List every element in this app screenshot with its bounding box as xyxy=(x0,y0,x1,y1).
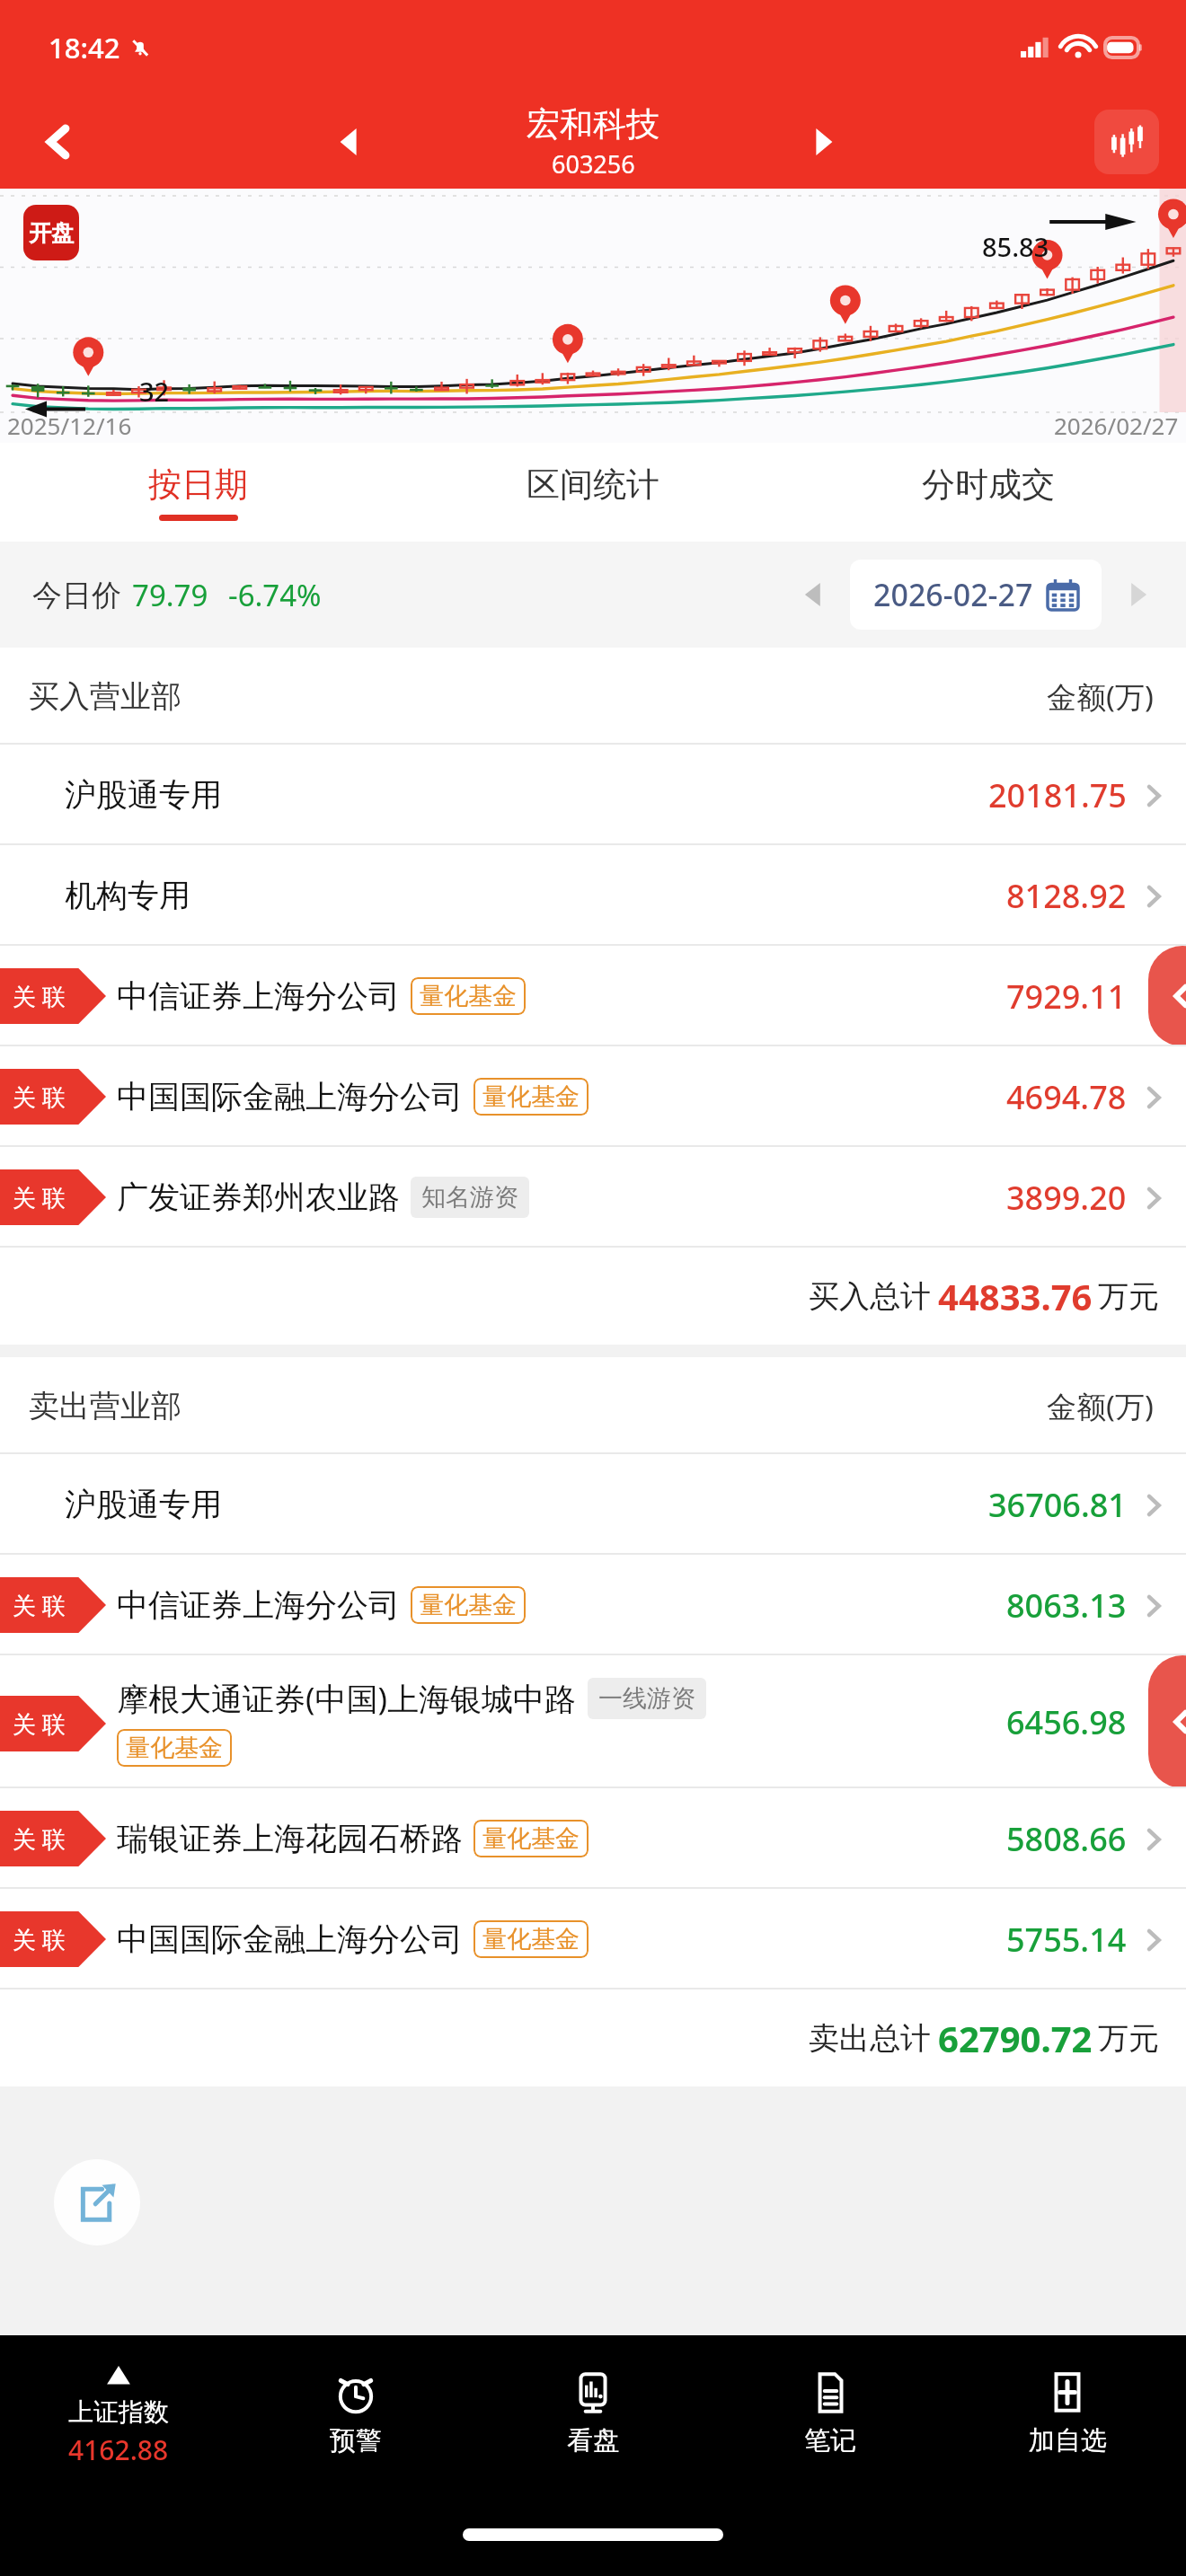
staticText: 4694.78 xyxy=(1006,1075,1127,1119)
staticText: 8063.13 xyxy=(1006,1584,1127,1628)
staticText: 量化基金 xyxy=(482,1924,580,1954)
staticText: 3899.20 xyxy=(1006,1176,1127,1220)
staticText: 中信证券上海分公司 xyxy=(117,976,400,1016)
staticText: 量化基金 xyxy=(482,1081,580,1112)
staticText: 8128.92 xyxy=(1006,874,1127,918)
button[interactable]: 机构专用 xyxy=(0,845,1186,946)
staticText: 上证指数 xyxy=(68,2396,169,2428)
staticText: 2026/02/27 xyxy=(1054,410,1179,441)
button[interactable]: Share xyxy=(54,2159,140,2245)
staticText: 加自选 xyxy=(1029,2424,1107,2457)
button[interactable]: Next stock xyxy=(791,110,854,173)
button[interactable]: 笔记 xyxy=(712,2335,949,2492)
button[interactable]: 按日期 xyxy=(0,443,395,542)
staticText: 20181.75 xyxy=(988,773,1127,817)
button[interactable]: K line chart xyxy=(1094,110,1159,174)
button[interactable]: Expand xyxy=(1148,946,1186,1046)
staticText: 5808.66 xyxy=(1006,1817,1127,1861)
staticText: 按日期 xyxy=(148,463,248,506)
staticText: 量化基金 xyxy=(420,1590,517,1620)
staticText: 量化基金 xyxy=(126,1733,223,1763)
button[interactable]: 区间统计 xyxy=(395,443,791,542)
button[interactable]: 看盘 xyxy=(474,2335,712,2492)
button[interactable]: 开盘 xyxy=(23,205,79,260)
staticText: 36706.81 xyxy=(988,1483,1127,1527)
staticText: 区间统计 xyxy=(527,463,659,506)
staticText: 瑞银证券上海花园石桥路 xyxy=(117,1819,463,1858)
staticText: 44833.76 xyxy=(938,1272,1093,1320)
button[interactable]: 2026-02-27 xyxy=(850,560,1102,630)
staticText: 万元 xyxy=(1098,2019,1159,2058)
staticText: 卖出总计 xyxy=(809,2019,931,2058)
staticText: 中信证券上海分公司 xyxy=(117,1585,400,1625)
button[interactable]: 分时成交 xyxy=(791,443,1186,542)
staticText: 2026-02-27 xyxy=(873,574,1033,615)
button[interactable]: 沪股通专用 xyxy=(0,1454,1186,1555)
staticText: 32 xyxy=(139,374,170,409)
button[interactable]: 沪股通专用 xyxy=(0,745,1186,845)
button[interactable]: Previous day xyxy=(789,570,837,619)
button[interactable]: 加自选 xyxy=(949,2335,1186,2492)
staticText: 一线游资 xyxy=(598,1683,695,1714)
staticText: 关 联 xyxy=(13,1589,66,1621)
staticText: 买入总计 xyxy=(809,1277,931,1316)
button[interactable]: Previous stock xyxy=(319,110,382,173)
button[interactable]: 关 联 xyxy=(0,1889,1186,1989)
staticText: 关 联 xyxy=(13,1081,66,1113)
button[interactable]: Back xyxy=(27,110,90,173)
staticText: 量化基金 xyxy=(420,981,517,1011)
staticText: 预警 xyxy=(330,2424,382,2457)
staticText: 量化基金 xyxy=(482,1823,580,1854)
staticText: 关 联 xyxy=(13,1707,66,1740)
button[interactable]: 关 联 xyxy=(0,1555,1186,1655)
staticText: -6.74% xyxy=(228,575,322,615)
button[interactable]: 关 联 xyxy=(0,946,1186,1046)
staticText: 关 联 xyxy=(13,980,66,1012)
staticText: 7929.11 xyxy=(1006,975,1127,1019)
staticText: 4162.88 xyxy=(68,2431,169,2468)
button[interactable]: 关 联 xyxy=(0,1046,1186,1147)
staticText: 中国国际金融上海分公司 xyxy=(117,1077,463,1116)
button[interactable]: 关 联 xyxy=(0,1655,1186,1788)
staticText: 万元 xyxy=(1098,1277,1159,1316)
staticText: 看盘 xyxy=(567,2424,619,2457)
button[interactable]: Expand xyxy=(1148,1655,1186,1788)
staticText: 关 联 xyxy=(13,1181,66,1213)
staticText: 知名游资 xyxy=(421,1182,518,1213)
staticText: 金额(万) xyxy=(1047,676,1154,717)
staticText: 机构专用 xyxy=(65,876,190,915)
staticText: 金额(万) xyxy=(1047,1386,1154,1426)
staticText: 5755.14 xyxy=(1006,1918,1127,1962)
button[interactable]: Next day xyxy=(1114,570,1163,619)
staticText: 沪股通专用 xyxy=(65,775,222,815)
staticText: 今日价 xyxy=(32,577,121,614)
staticText: 中国国际金融上海分公司 xyxy=(117,1919,463,1959)
staticText: 开盘 xyxy=(29,219,74,247)
staticText: 摩根大通证券(中国)上海银城中路 xyxy=(117,1677,577,1720)
staticText: 85.83 xyxy=(982,229,1049,264)
staticText: 603256 xyxy=(552,147,635,181)
staticText: 沪股通专用 xyxy=(65,1485,222,1524)
staticText: 买入营业部 xyxy=(29,677,181,716)
button[interactable]: 上证指数 xyxy=(0,2335,237,2492)
staticText: 18:42 xyxy=(49,29,120,66)
staticText: 笔记 xyxy=(804,2424,856,2457)
staticText: 6456.98 xyxy=(1006,1700,1127,1744)
staticText: 关 联 xyxy=(13,1822,66,1855)
staticText: 卖出营业部 xyxy=(29,1387,181,1425)
staticText: 分时成交 xyxy=(922,463,1055,506)
staticText: 广发证券郑州农业路 xyxy=(117,1178,400,1217)
staticText: 2025/12/16 xyxy=(7,410,132,441)
staticText: 宏和科技 xyxy=(527,103,659,146)
button[interactable]: 预警 xyxy=(237,2335,474,2492)
button[interactable]: 关 联 xyxy=(0,1147,1186,1248)
staticText: 关 联 xyxy=(13,1923,66,1955)
button[interactable]: 关 联 xyxy=(0,1788,1186,1889)
staticText: 62790.72 xyxy=(938,2014,1093,2062)
staticText: 79.79 xyxy=(132,575,208,615)
